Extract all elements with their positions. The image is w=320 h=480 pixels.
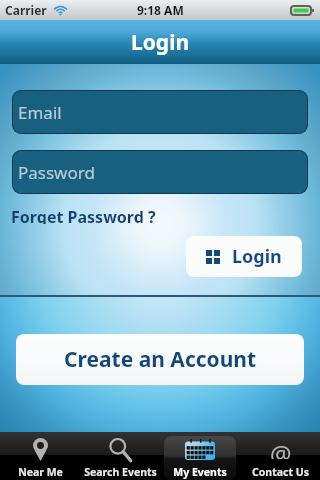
staticText: @ bbox=[270, 437, 292, 459]
staticText: Forget Password ? bbox=[11, 206, 156, 224]
button[interactable]: Search Events bbox=[80, 432, 160, 480]
staticText: Login bbox=[131, 28, 190, 57]
staticText: Password bbox=[18, 161, 95, 184]
staticText: My Events bbox=[173, 465, 227, 479]
staticText: Search Events bbox=[84, 465, 157, 479]
other: My Events bbox=[185, 439, 215, 460]
button[interactable]: Near Me bbox=[0, 432, 80, 480]
other: Near Me bbox=[33, 438, 48, 461]
button[interactable]: Password bbox=[13, 151, 307, 193]
button[interactable]: Create an Account bbox=[16, 334, 304, 385]
staticText: Carrier bbox=[5, 2, 47, 18]
staticText: Contact Us bbox=[252, 465, 309, 479]
button[interactable]: Email bbox=[13, 91, 307, 133]
button[interactable]: Contact Us bbox=[240, 432, 320, 480]
staticText: Create an Account bbox=[64, 345, 257, 374]
button[interactable]: My Events bbox=[160, 432, 240, 480]
staticText: 9:18 AM bbox=[137, 2, 184, 18]
staticText: Email bbox=[18, 101, 62, 124]
button[interactable]: Login bbox=[186, 236, 302, 277]
other: Search Events bbox=[110, 439, 131, 461]
other: Contact Us bbox=[269, 438, 293, 460]
staticText: Login bbox=[232, 244, 282, 269]
staticText: Near Me bbox=[18, 465, 63, 479]
